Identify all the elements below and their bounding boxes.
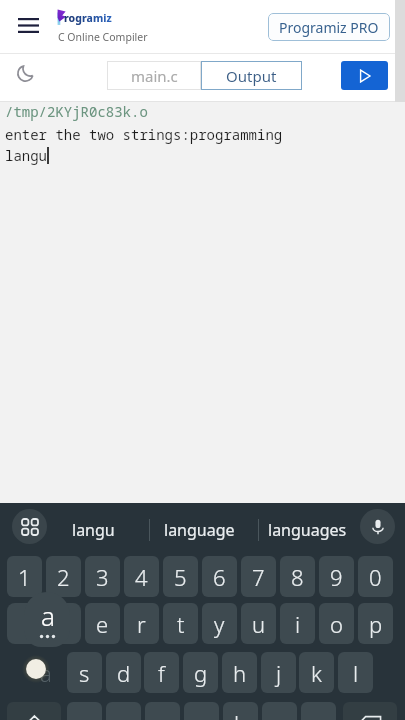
button[interactable]: 7 [241, 556, 276, 597]
staticText: r [137, 609, 146, 639]
button[interactable]: 4 [124, 556, 159, 597]
button[interactable]: h [222, 652, 257, 693]
button[interactable]: 0 [358, 556, 393, 597]
button[interactable]: a [28, 652, 63, 693]
staticText: languages [268, 519, 347, 541]
button[interactable]: v [184, 702, 219, 720]
button[interactable]: 1 [7, 556, 42, 597]
button[interactable]: Output [201, 61, 302, 90]
button[interactable]: c [145, 702, 180, 720]
staticText: 7 [252, 562, 265, 592]
button[interactable]: Menu [9, 5, 48, 45]
button[interactable]: Key [343, 702, 397, 720]
staticText: main.c [131, 66, 178, 86]
staticText: a [41, 598, 55, 633]
button[interactable]: Programiz PRO [268, 13, 390, 41]
staticText: 5 [174, 562, 187, 592]
button[interactable]: o [319, 603, 354, 644]
staticText: u [252, 609, 266, 639]
button[interactable]: 3 [85, 556, 120, 597]
staticText: p [369, 609, 383, 639]
button[interactable]: u [241, 603, 276, 644]
button[interactable]: f [144, 652, 179, 693]
button[interactable]: langu [72, 503, 115, 556]
button[interactable]: r [124, 603, 159, 644]
button[interactable]: Toggle dark mode [8, 56, 42, 90]
staticText: s [79, 658, 90, 688]
staticText: langu [72, 519, 115, 541]
button[interactable]: k [299, 652, 334, 693]
staticText: 9 [330, 562, 343, 592]
staticText: 2 [57, 562, 70, 592]
button[interactable]: Keyboard toolbar [12, 509, 47, 544]
button[interactable]: Key [7, 702, 61, 720]
button[interactable]: s [67, 652, 102, 693]
staticText: Programiz PRO [279, 18, 379, 37]
button[interactable]: d [106, 652, 141, 693]
staticText: language [164, 519, 235, 541]
button[interactable]: 8 [280, 556, 315, 597]
button[interactable]: e [85, 603, 120, 644]
staticText: l [353, 658, 359, 688]
staticText: 6 [213, 562, 226, 592]
staticText: 4 [135, 562, 148, 592]
staticText: enter the two strings:programming [5, 125, 283, 144]
staticText: k [311, 658, 322, 688]
staticText: a [40, 658, 52, 688]
button[interactable]: x [106, 702, 141, 720]
button[interactable]: a [7, 603, 81, 644]
button[interactable]: j [261, 652, 296, 693]
button[interactable]: y [202, 603, 237, 644]
button[interactable]: 5 [163, 556, 198, 597]
staticText: Output [226, 66, 277, 86]
staticText: 1 [18, 562, 31, 592]
button[interactable]: t [163, 603, 198, 644]
staticText: h [233, 658, 247, 688]
staticText: i [295, 609, 301, 639]
staticText: t [177, 609, 185, 639]
staticText: d [117, 658, 131, 688]
button[interactable]: languages [268, 503, 347, 556]
button[interactable]: language [164, 503, 235, 556]
button[interactable]: i [280, 603, 315, 644]
staticText: /tmp/2KYjR0c83k.o [5, 102, 148, 121]
button[interactable]: z [67, 702, 102, 720]
button[interactable]: g [183, 652, 218, 693]
button[interactable]: 9 [319, 556, 354, 597]
button[interactable]: n [262, 702, 297, 720]
staticText: y [214, 609, 225, 639]
staticText: b [234, 708, 248, 720]
button[interactable]: Run [341, 61, 388, 90]
staticText: 0 [369, 562, 382, 592]
staticText: e [96, 609, 109, 639]
staticText: langu [5, 146, 47, 165]
staticText: j [276, 658, 282, 688]
button[interactable]: b [223, 702, 258, 720]
staticText: C Online Compiler [58, 30, 148, 44]
staticText: 3 [96, 562, 109, 592]
button[interactable]: l [338, 652, 373, 693]
staticText: rogramiz [64, 11, 112, 25]
button[interactable]: main.c [107, 61, 201, 90]
button[interactable]: Voice input [360, 509, 395, 544]
staticText: 8 [291, 562, 304, 592]
staticText: g [194, 658, 208, 688]
button[interactable]: 2 [46, 556, 81, 597]
button[interactable]: 6 [202, 556, 237, 597]
button[interactable]: p [358, 603, 393, 644]
staticText: f [158, 658, 165, 688]
button[interactable]: m [301, 702, 336, 720]
staticText: o [330, 609, 343, 639]
